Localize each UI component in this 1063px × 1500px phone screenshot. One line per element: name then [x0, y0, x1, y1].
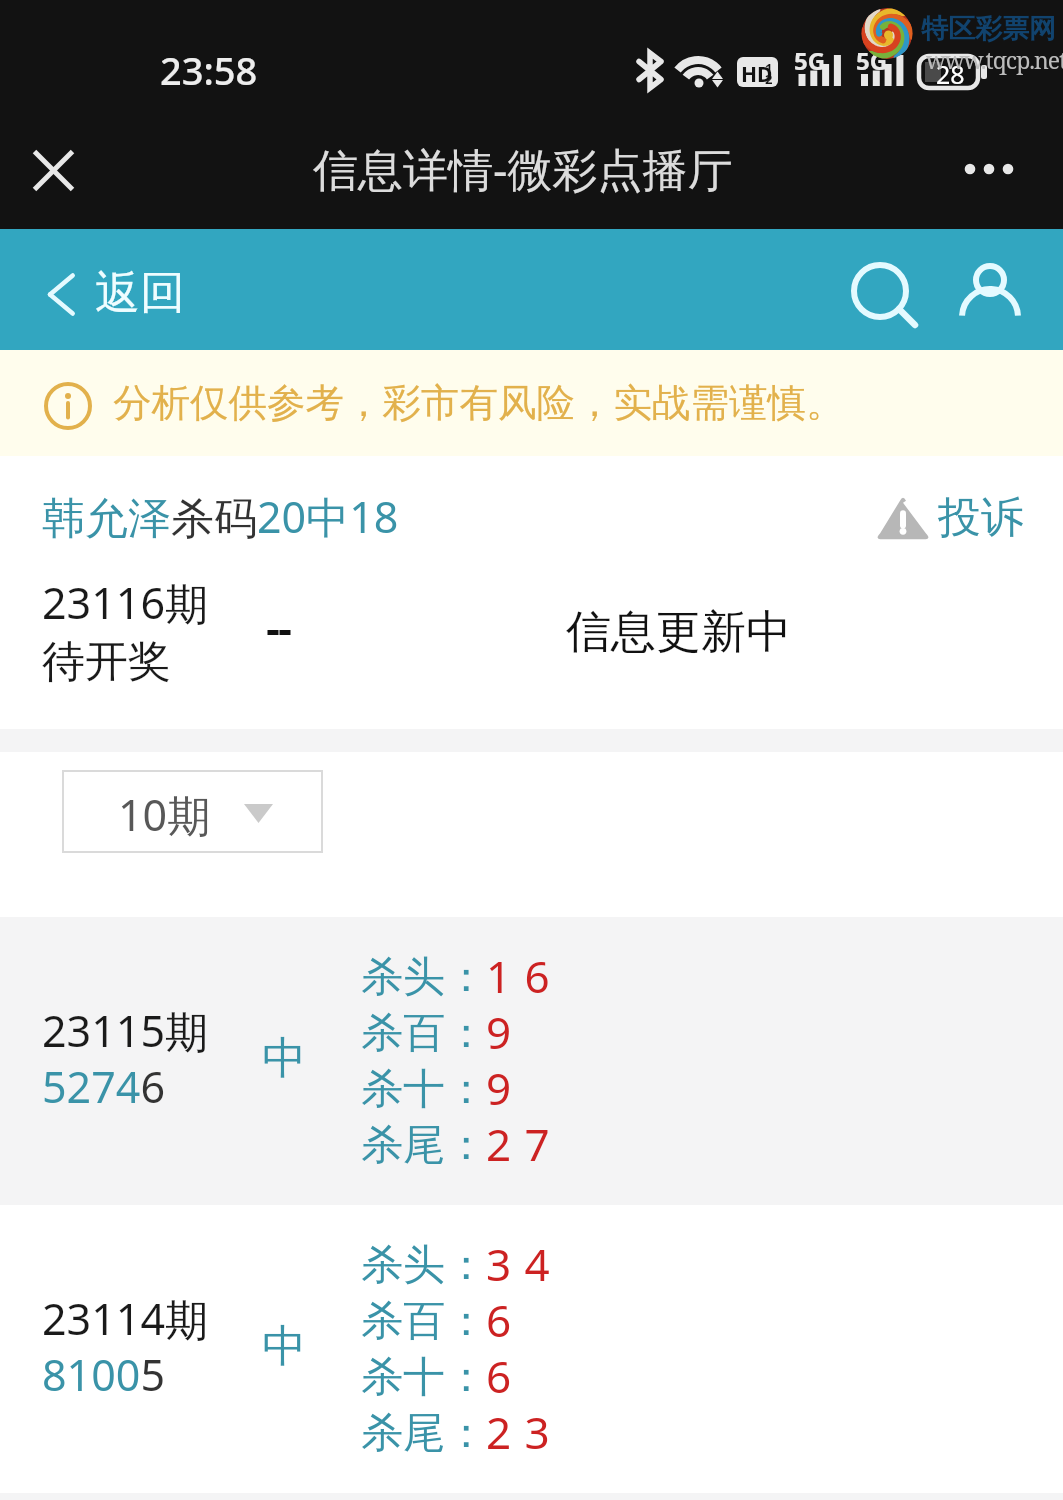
staticText: 5G — [856, 44, 888, 77]
staticText: 23115期 — [42, 1001, 208, 1060]
button[interactable]: 23114期 — [0, 1205, 1063, 1493]
staticText: 杀头： — [361, 951, 487, 1004]
staticText: 杀十： — [361, 1063, 487, 1116]
staticText: 杀十： — [361, 1351, 487, 1404]
staticText: www.tqcp.net — [926, 44, 1063, 75]
staticText: 杀尾： — [361, 1119, 487, 1172]
staticText: 信息更新中 — [566, 604, 791, 661]
button[interactable]: Close — [14, 131, 94, 211]
staticText: 6 — [486, 1346, 513, 1406]
staticText: 3 4 — [486, 1234, 551, 1294]
staticText: 杀百： — [361, 1295, 487, 1348]
staticText: 2 — [765, 70, 773, 88]
staticText: 2 7 — [486, 1114, 551, 1174]
staticText: 52746 — [42, 1057, 165, 1116]
staticText: HD — [741, 60, 773, 89]
staticText: 杀尾： — [361, 1407, 487, 1460]
staticText: 10期 — [118, 785, 211, 844]
staticText: 23116期 — [42, 573, 208, 632]
staticText: 28 — [936, 57, 965, 91]
staticText: 杀百： — [361, 1007, 487, 1060]
button[interactable]: 返回 — [30, 229, 220, 350]
button[interactable]: 投诉 — [874, 489, 1024, 547]
staticText: 信息详情-微彩点播厅 — [313, 138, 733, 199]
staticText: 1 — [765, 59, 773, 77]
button[interactable]: Search — [838, 245, 926, 333]
staticText: 投诉 — [938, 491, 1024, 545]
staticText: 6 — [486, 1290, 513, 1350]
staticText: 2 3 — [486, 1402, 551, 1462]
staticText: 81005 — [42, 1345, 165, 1404]
staticText: 9 — [486, 1058, 513, 1118]
staticText: 杀头： — [361, 1239, 487, 1292]
staticText: 返回 — [95, 265, 185, 322]
button[interactable]: 10期 — [62, 770, 323, 853]
staticText: 23:58 — [160, 44, 258, 96]
staticText: 1 6 — [486, 946, 551, 1006]
button[interactable]: 韩允泽杀码20中18 — [42, 487, 399, 546]
staticText: 中 — [262, 1319, 306, 1374]
staticText: 分析仅供参考，彩市有风险，实战需谨慎。 — [113, 379, 845, 428]
staticText: 特区彩票网 — [921, 12, 1056, 46]
button[interactable]: 23115期 — [0, 917, 1063, 1205]
staticText: 9 — [486, 1002, 513, 1062]
staticText: 5G — [794, 44, 826, 77]
button[interactable]: More options — [948, 136, 1030, 208]
staticText: 23114期 — [42, 1289, 208, 1348]
staticText: 中 — [262, 1031, 306, 1086]
staticText: 韩允泽杀码20中18 — [42, 487, 399, 546]
button[interactable]: Profile — [946, 245, 1034, 333]
staticText: 待开奖 — [42, 635, 171, 689]
